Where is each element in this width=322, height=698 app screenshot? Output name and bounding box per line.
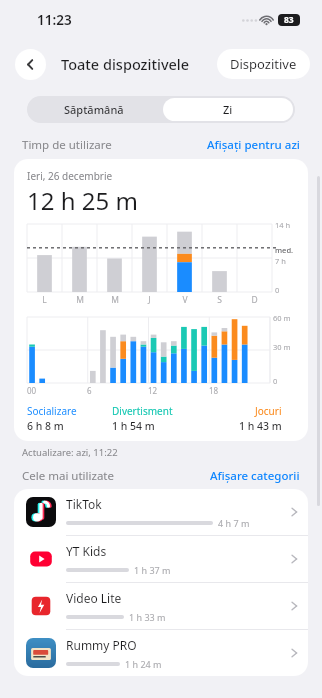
staticText: Ieri, 26 decembrie	[27, 169, 113, 183]
staticText: 11:23	[37, 11, 72, 29]
staticText: Cele mai utilizate	[22, 468, 115, 484]
button[interactable]: Dispozitive	[217, 49, 310, 79]
staticText: 1 h 54 m	[112, 419, 155, 433]
staticText: 60 m	[273, 313, 291, 323]
staticText: Rummy PRO	[66, 637, 137, 653]
staticText: YT Kids	[66, 543, 107, 559]
staticText: 14 h	[275, 220, 291, 230]
staticText: Video Lite	[66, 590, 122, 606]
staticText: 83	[284, 14, 294, 26]
staticText: Jocuri	[255, 404, 282, 418]
staticText: Divertisment	[112, 404, 173, 418]
staticText: S	[217, 294, 222, 306]
staticText: 1 h 43 m	[239, 419, 282, 433]
button[interactable]: TikTok	[14, 489, 308, 535]
button[interactable]: Afișați pentru azi	[207, 137, 300, 153]
button[interactable]: Zi	[163, 98, 293, 121]
staticText: Zi	[223, 102, 233, 117]
staticText: 4 h 7 m	[218, 517, 250, 529]
staticText: 12	[148, 385, 158, 396]
button[interactable]: YT Kids	[14, 536, 308, 582]
staticText: 6	[87, 385, 92, 396]
staticText: Actualizare: azi, 11:22	[22, 446, 118, 459]
button[interactable]: Săptămână	[27, 96, 161, 123]
staticText: 7 h	[275, 256, 286, 266]
staticText: 1 h 33 m	[129, 611, 166, 623]
staticText: 1 h 24 m	[125, 658, 162, 670]
button[interactable]: Video Lite	[14, 583, 308, 629]
staticText: V	[182, 294, 188, 306]
staticText: 1 h 37 m	[134, 564, 171, 576]
staticText: M	[111, 294, 119, 306]
button[interactable]: Rummy PRO	[14, 630, 308, 676]
staticText: J	[148, 294, 151, 306]
staticText: Dispozitive	[230, 55, 297, 73]
staticText: Toate dispozitivele	[61, 54, 190, 74]
staticText: Socializare	[27, 404, 77, 418]
staticText: 6 h 8 m	[27, 419, 64, 433]
staticText: TikTok	[66, 496, 102, 512]
staticText: Timp de utilizare	[22, 137, 112, 153]
staticText: L	[42, 294, 47, 306]
staticText: Afișare categorii	[210, 468, 300, 484]
button[interactable]: Back	[15, 49, 46, 80]
staticText: med.	[275, 245, 294, 255]
staticText: 18	[209, 385, 219, 396]
staticText: D	[251, 294, 258, 306]
staticText: 0	[275, 285, 280, 295]
staticText: M	[76, 294, 84, 306]
staticText: 30 m	[273, 342, 291, 352]
staticText: 12 h 25 m	[27, 184, 138, 217]
staticText: Afișați pentru azi	[207, 137, 300, 153]
staticText: Săptămână	[64, 102, 124, 117]
staticText: 00	[27, 385, 37, 396]
staticText: 0	[273, 376, 278, 386]
button[interactable]: Afișare categorii	[210, 468, 300, 484]
